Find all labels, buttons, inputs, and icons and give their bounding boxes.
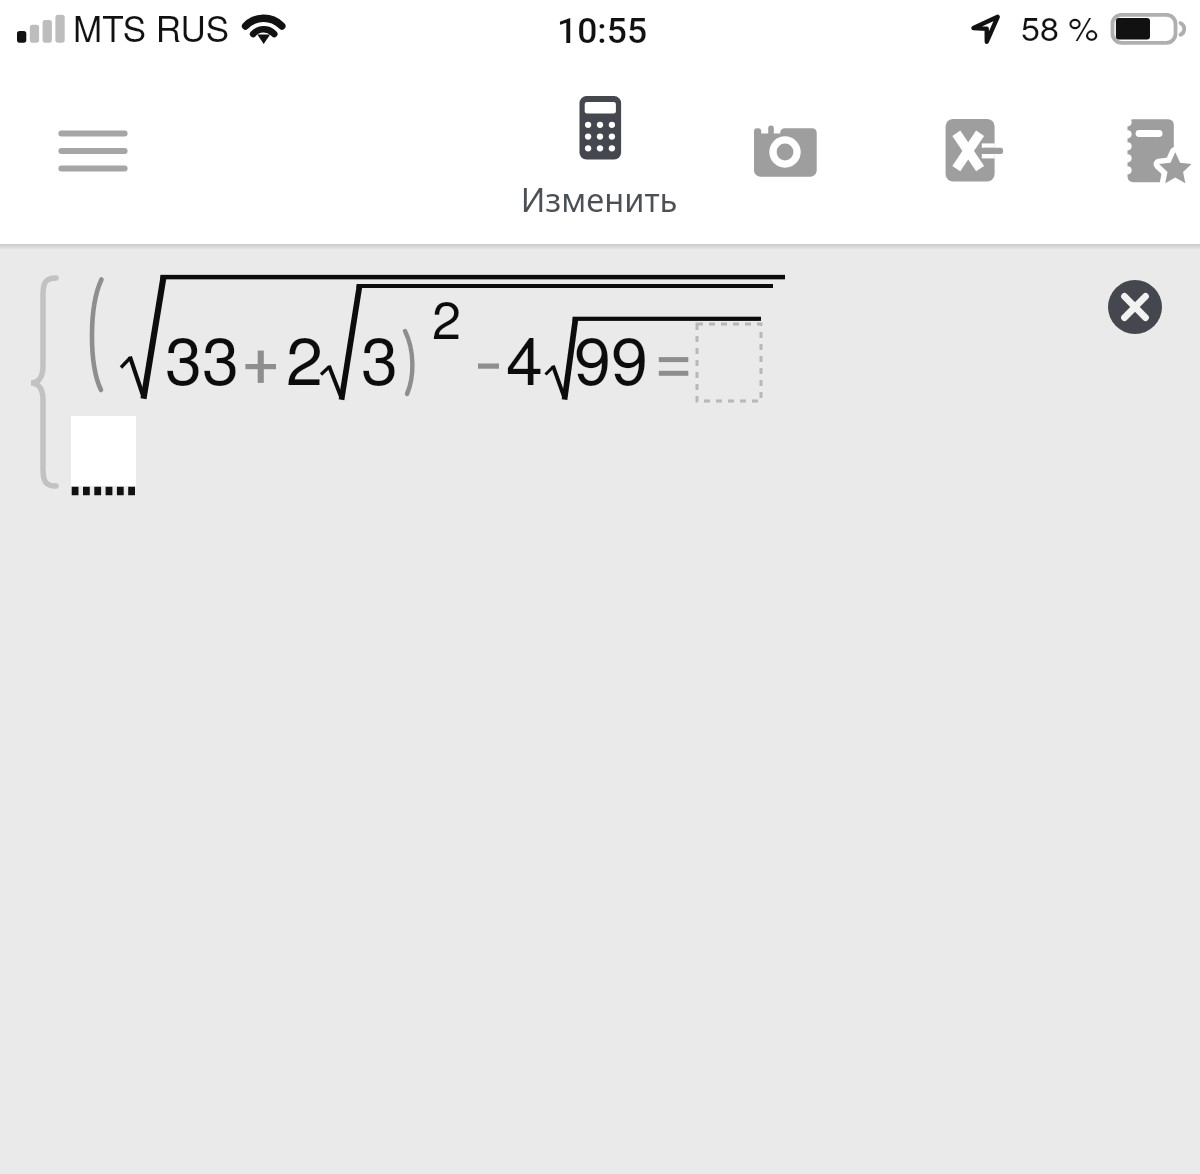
staticText: 4 xyxy=(506,309,543,404)
button[interactable]: Menu xyxy=(33,105,153,197)
staticText: 33 xyxy=(165,309,239,404)
staticText: 58 % xyxy=(1021,2,1099,51)
staticText: MTS RUS xyxy=(73,2,230,52)
staticText: 2 xyxy=(286,309,323,404)
staticText: 99 xyxy=(574,309,648,404)
button[interactable] xyxy=(500,88,700,228)
staticText: 10:55 xyxy=(557,10,648,52)
staticText: 3 xyxy=(361,309,398,404)
button[interactable]: Saved problems xyxy=(1110,108,1200,194)
staticText: Изменить xyxy=(349,177,849,221)
button[interactable]: Equation editor xyxy=(930,108,1022,194)
button[interactable]: Scan with camera xyxy=(740,110,832,196)
staticText: 2 xyxy=(432,279,462,354)
button[interactable]: Clear xyxy=(1108,280,1162,334)
